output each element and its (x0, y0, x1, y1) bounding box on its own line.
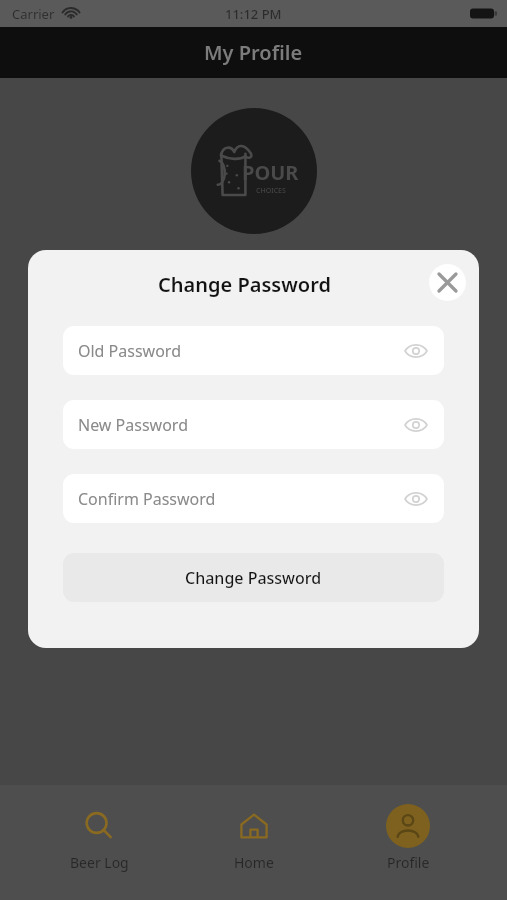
button[interactable]: Confirm Password (63, 474, 444, 523)
staticText: Old Password (78, 340, 181, 362)
staticText: My Profile (204, 39, 303, 66)
staticText: Carrier (12, 5, 55, 23)
staticText: Confirm Password (78, 488, 216, 510)
staticText: Profile (387, 853, 430, 872)
staticText: Change Password (158, 271, 331, 298)
staticText: Beer Log (70, 853, 129, 872)
staticText: Home (234, 853, 274, 872)
button[interactable]: Home (199, 799, 309, 876)
staticText: POUR (242, 159, 299, 186)
staticText: CHOICES (256, 186, 286, 196)
staticText: 11:12 PM (225, 5, 282, 23)
button[interactable]: Profile photo (191, 108, 317, 234)
staticText: Change Password (185, 567, 322, 589)
button[interactable]: Show password (401, 484, 431, 514)
button[interactable]: Close (429, 264, 466, 301)
button[interactable]: Profile (353, 799, 463, 876)
button[interactable]: Old Password (63, 326, 444, 375)
button[interactable]: Beer Log (44, 799, 154, 876)
button[interactable]: Change Password (63, 553, 444, 602)
button[interactable]: Show password (401, 410, 431, 440)
button[interactable]: Show password (401, 336, 431, 366)
button[interactable]: New Password (63, 400, 444, 449)
staticText: New Password (78, 414, 188, 436)
